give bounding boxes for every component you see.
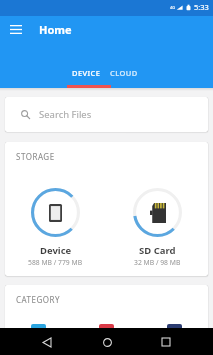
staticText: CATEGORY [16,294,61,305]
button[interactable]: Category [140,324,208,339]
staticText: 4G [170,5,176,10]
staticText: 32 MB / 98 MB [134,258,181,267]
staticText: 588 MB / 779 MB [28,258,83,267]
button[interactable]: Back [34,329,60,355]
staticText: DEVICE [72,68,101,78]
staticText: Home [39,22,72,37]
button[interactable]: Open navigation menu [0,16,32,42]
button[interactable]: Device [5,187,106,267]
staticText: SD Card [139,244,176,257]
button[interactable]: Category [72,324,140,339]
staticText: 5:33 [194,2,209,12]
button[interactable]: Category [5,324,72,339]
staticText: CLOUD [110,68,138,78]
button[interactable]: Search Files [5,97,208,132]
staticText: Device [40,244,72,257]
button[interactable]: SD Card [106,187,208,267]
button[interactable]: DEVICE [68,57,105,88]
button[interactable]: Recent apps [153,329,179,355]
button[interactable]: CLOUD [105,57,142,88]
staticText: STORAGE [16,151,55,162]
button[interactable]: Home [94,329,120,355]
staticText: Search Files [39,108,92,121]
